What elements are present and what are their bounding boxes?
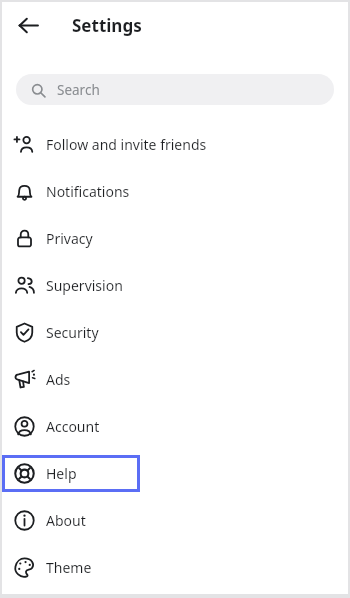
staticText: Follow and invite friends [46,135,207,154]
staticText: Account [46,417,100,436]
button[interactable]: Privacy [2,220,348,257]
button[interactable]: Follow and invite friends [2,126,348,163]
button[interactable]: Supervision [2,267,348,304]
staticText: Help [46,464,77,483]
staticText: Settings [72,14,142,37]
staticText: Ads [46,370,71,389]
button[interactable]: Theme [2,549,348,586]
staticText: Supervision [46,276,123,295]
button[interactable]: Search [16,74,334,105]
button[interactable]: Account [2,408,348,445]
staticText: About [46,511,86,530]
button[interactable]: Notifications [2,173,348,210]
staticText: Notifications [46,182,130,201]
staticText: Search [57,81,100,99]
button[interactable]: Security [2,314,348,351]
staticText: Privacy [46,229,93,248]
button[interactable]: Help [2,455,140,492]
button[interactable]: About [2,502,348,539]
button[interactable]: Back [11,8,45,42]
button[interactable]: Ads [2,361,348,398]
staticText: Theme [46,558,92,577]
staticText: Security [46,323,99,342]
